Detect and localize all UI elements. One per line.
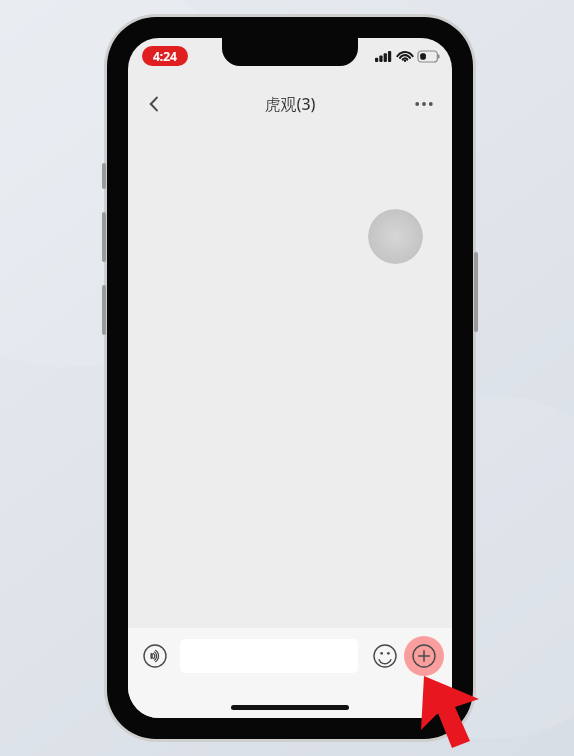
button[interactable]: Avatar [368,209,423,264]
staticText: 4:24 [153,48,177,64]
button[interactable]: More functions [404,636,444,676]
staticText: 虎观(3) [264,93,316,115]
button[interactable]: 4:24 [142,46,188,66]
button[interactable]: More options [404,84,444,124]
button[interactable]: Voice message [136,637,174,675]
button[interactable]: Back [134,84,174,124]
button[interactable]: Emoji [366,637,404,675]
